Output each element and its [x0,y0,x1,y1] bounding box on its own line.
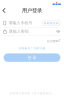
button[interactable]: Back [0,6,8,15]
button[interactable]: 忘记密码? [47,38,60,44]
staticText: 登 录 [27,55,36,60]
staticText: 用户登录 [22,7,42,14]
staticText: 请输入手机号 [8,20,32,25]
button[interactable]: 没有账号？立即注册 [18,45,45,51]
staticText: 没有账号？立即注册 [18,47,45,50]
staticText: 获取验证码 [44,21,59,25]
button[interactable]: 获取验证码 [42,20,60,26]
button[interactable]: Show password [56,30,60,33]
button[interactable]: 登 录 [4,53,60,62]
staticText: 登录即代表同意《用户服务协议》 [9,92,54,95]
staticText: 忘记密码? [47,39,60,43]
staticText: 请输入密码 [9,29,29,34]
